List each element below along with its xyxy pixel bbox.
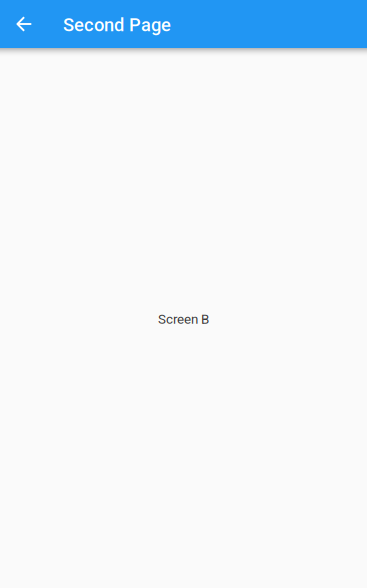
staticText: Screen B — [158, 311, 209, 327]
button[interactable]: Back — [0, 0, 48, 48]
staticText: Second Page — [63, 14, 171, 36]
